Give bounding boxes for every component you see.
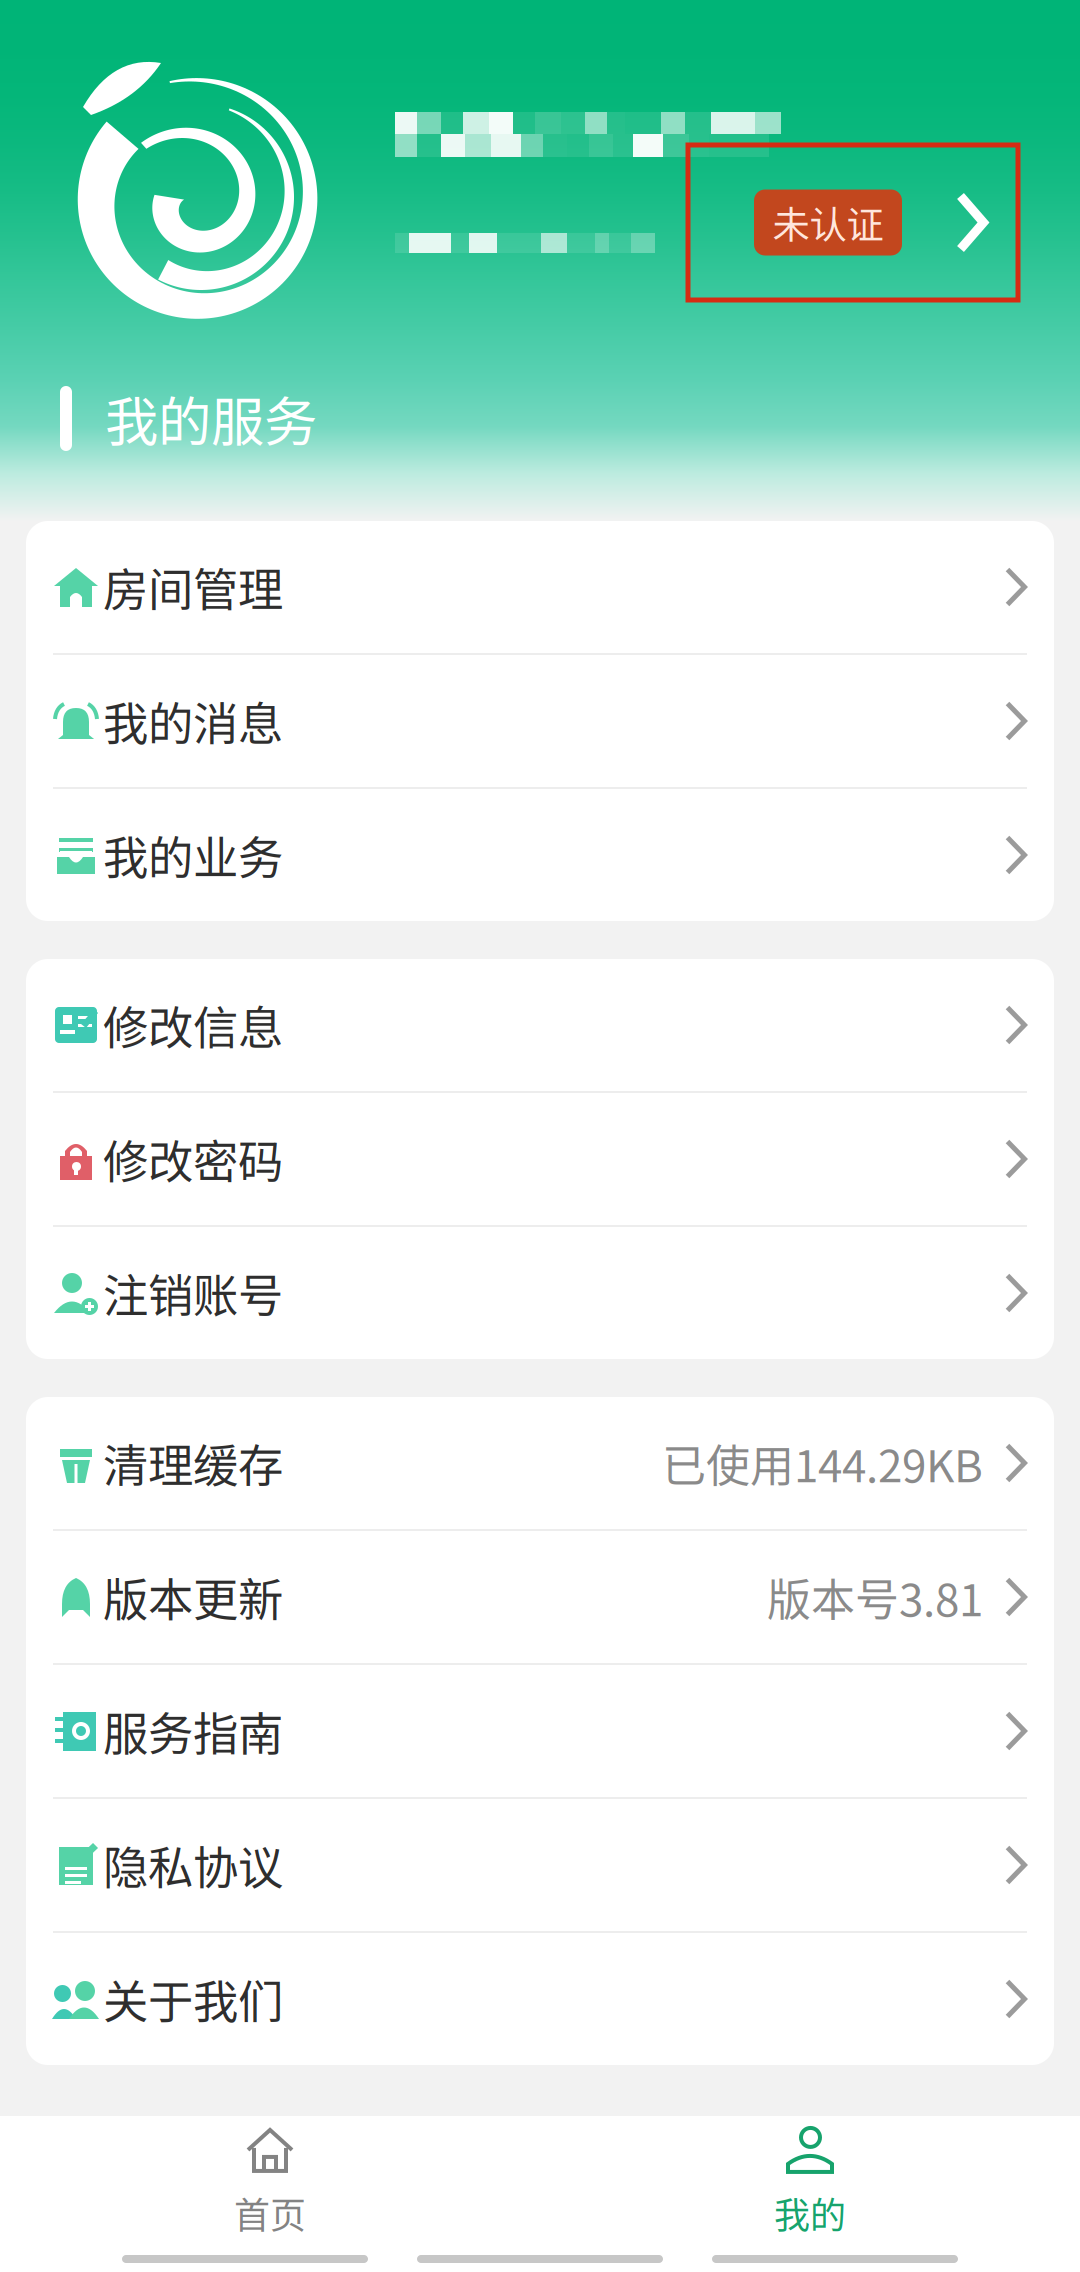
staticText: 修改信息 (103, 992, 283, 1058)
button[interactable]: 我的消息 (26, 655, 1054, 787)
staticText: 版本号3.81 (767, 1565, 983, 1629)
staticText: 注销账号 (103, 1260, 283, 1326)
staticText: 我的 (774, 2187, 846, 2239)
staticText: 关于我们 (103, 1966, 283, 2032)
button[interactable]: 关于我们 (26, 1933, 1054, 2065)
button[interactable]: 修改信息 (26, 959, 1054, 1091)
staticText: 已使用144.29KB (662, 1431, 983, 1495)
button[interactable]: 房间管理 (26, 521, 1054, 653)
button[interactable]: 清理缓存 (26, 1397, 1054, 1529)
staticText: 修改密码 (103, 1126, 283, 1192)
staticText: 我的业务 (103, 822, 283, 888)
button[interactable]: 我的业务 (26, 789, 1054, 921)
staticText: 我的服务 (105, 380, 317, 457)
button[interactable]: 注销账号 (26, 1227, 1054, 1359)
button[interactable]: 服务指南 (26, 1665, 1054, 1797)
staticText: 首页 (234, 2187, 306, 2239)
staticText: 未认证 (772, 195, 883, 250)
button[interactable]: 首页 (0, 2117, 540, 2247)
staticText: 我的消息 (103, 688, 283, 754)
button[interactable]: 未认证 (688, 145, 1018, 300)
button[interactable]: 版本更新 (26, 1531, 1054, 1663)
button[interactable]: 修改密码 (26, 1093, 1054, 1225)
staticText: 房间管理 (103, 554, 283, 620)
button[interactable]: 我的 (540, 2117, 1080, 2247)
button[interactable]: 隐私协议 (26, 1799, 1054, 1931)
staticText: 版本更新 (103, 1564, 283, 1630)
staticText: 隐私协议 (103, 1832, 283, 1898)
staticText: 清理缓存 (103, 1430, 283, 1496)
staticText: 服务指南 (103, 1698, 283, 1764)
